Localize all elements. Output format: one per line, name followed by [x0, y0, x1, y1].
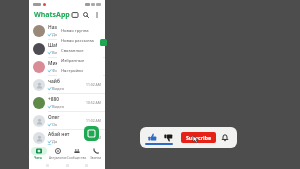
staticText: Назар Ал: [48, 24, 71, 31]
staticText: Subscribe: [186, 134, 212, 141]
staticText: Связанные устройства: [61, 48, 103, 54]
button[interactable]: Назар Ал: [29, 22, 105, 40]
staticText: Ок: [52, 122, 58, 127]
staticText: Избранные сообщения: [61, 58, 103, 64]
staticText: Шаблон?: [48, 42, 70, 49]
button[interactable]: More options: [92, 10, 101, 20]
button[interactable]: Notifications: [219, 132, 231, 144]
staticText: +880 1920-894216: [48, 96, 86, 103]
button[interactable]: Search: [81, 10, 91, 20]
button[interactable]: Михаил М: [29, 58, 105, 76]
staticText: 11:02 AM: [86, 135, 101, 140]
button[interactable]: Новая группа: [57, 26, 103, 36]
staticText: Новая группа: [61, 28, 89, 34]
button[interactable]: Dislike: [162, 131, 175, 144]
staticText: Олег: [48, 114, 60, 121]
staticText: 11:02 AM: [86, 82, 101, 87]
staticText: Михаил М: [48, 60, 73, 67]
button[interactable]: +880 1920-894216: [29, 94, 105, 112]
staticText: Актуальное: [49, 156, 67, 160]
staticText: 10:52 AM: [86, 100, 101, 105]
button[interactable]: Like: [146, 131, 159, 144]
button[interactable]: New chat: [84, 126, 99, 141]
staticText: Сообщества: [67, 156, 86, 160]
button[interactable]: Звонки: [86, 145, 105, 161]
staticText: Звонки: [90, 156, 102, 160]
staticText: Чаты: [34, 156, 43, 160]
button[interactable]: Олег: [29, 112, 105, 130]
staticText: WhatsApp: [34, 10, 70, 20]
staticText: Да: [52, 139, 58, 144]
staticText: 11:02 AM: [86, 118, 101, 123]
button[interactable]: Сообщества: [67, 145, 86, 161]
button[interactable]: Чаты: [29, 145, 48, 161]
staticText: Настройки: [61, 68, 83, 74]
button[interactable]: Абай нет: [29, 130, 105, 145]
staticText: чайб: [48, 78, 60, 85]
button[interactable]: Актуальное: [48, 145, 67, 161]
button[interactable]: Camera: [70, 10, 80, 20]
staticText: Документ: [52, 32, 72, 37]
button[interactable]: Избранные сообщения: [57, 56, 103, 66]
staticText: Видео: [52, 86, 65, 91]
button[interactable]: Шаблон?: [29, 40, 105, 58]
staticText: Фото: [52, 68, 62, 73]
staticText: Новая рассылка: [61, 38, 94, 44]
button[interactable]: Новая рассылка: [57, 36, 103, 46]
button[interactable]: Связанные устройства: [57, 46, 103, 56]
staticText: Видео: [52, 50, 65, 55]
staticText: Абай нет: [48, 131, 70, 138]
staticText: Видео: [52, 104, 65, 109]
button[interactable]: чайб: [29, 76, 105, 94]
button[interactable]: Настройки: [57, 66, 103, 76]
button[interactable]: Subscribe: [181, 132, 216, 143]
